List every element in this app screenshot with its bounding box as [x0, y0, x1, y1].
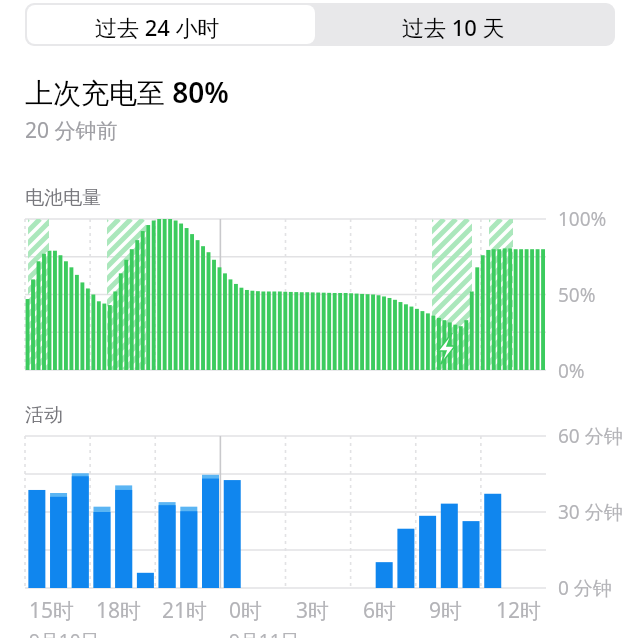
staticText: 21时 [162, 596, 208, 625]
staticText: 12时 [496, 596, 542, 625]
staticText: 过去 10 天 [402, 12, 505, 42]
staticText: 6时 [363, 596, 397, 625]
staticText: 100% [558, 206, 607, 232]
staticText: 过去 24 小时 [95, 12, 220, 42]
staticText: 3时 [296, 596, 330, 625]
staticText: 15时 [29, 596, 75, 625]
staticText: 50% [558, 282, 596, 308]
staticText: 9月11日 [229, 628, 300, 638]
staticText: 0% [558, 358, 585, 384]
staticText: 上次充电至 80% [25, 73, 229, 111]
button[interactable]: 过去 24 小时 [27, 5, 315, 44]
staticText: 0 分钟 [558, 575, 612, 601]
staticText: 9时 [429, 596, 463, 625]
staticText: 0时 [229, 596, 263, 625]
staticText: 30 分钟 [558, 499, 623, 525]
staticText: 18时 [96, 596, 142, 625]
button[interactable]: 过去 10 天 [320, 5, 610, 44]
staticText: 活动 [25, 403, 63, 427]
staticText: 20 分钟前 [25, 116, 118, 145]
staticText: 60 分钟 [558, 423, 623, 449]
staticText: 9月10日 [29, 628, 100, 638]
staticText: 电池电量 [25, 186, 101, 210]
